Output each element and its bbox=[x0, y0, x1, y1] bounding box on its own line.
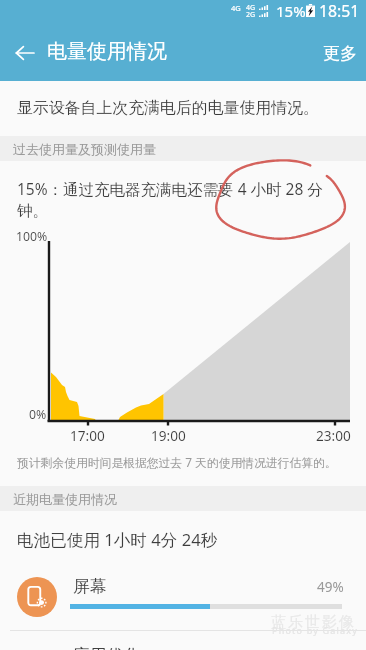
staticText: 过去使用量及预测使用量 bbox=[13, 141, 156, 157]
staticText: 显示设备自上次充满电后的电量使用情况。 bbox=[17, 98, 319, 118]
staticText: 近期电量使用情况 bbox=[13, 491, 117, 507]
staticText: 4G bbox=[231, 3, 241, 13]
staticText: 更多 bbox=[323, 43, 357, 64]
staticText: 2G bbox=[246, 10, 256, 20]
staticText: 49% bbox=[317, 578, 344, 596]
staticText: 电量使用情况 bbox=[47, 39, 167, 64]
button[interactable]: 屏幕 bbox=[0, 572, 366, 630]
staticText: 17:00 bbox=[70, 426, 105, 445]
button[interactable]: Back bbox=[1, 25, 49, 81]
staticText: 4G bbox=[246, 3, 256, 13]
staticText: Photo by Galaxy bbox=[272, 624, 359, 636]
staticText: 电池已使用 1小时 4分 24秒 bbox=[17, 528, 218, 551]
staticText: 预计剩余使用时间是根据您过去 7 天的使用情况进行估算的。 bbox=[17, 454, 337, 470]
staticText: 100% bbox=[16, 228, 48, 245]
button[interactable]: 更多 bbox=[309, 25, 366, 81]
staticText: 0% bbox=[29, 406, 47, 423]
button[interactable]: 应用优化 bbox=[0, 641, 366, 650]
staticText: 19:00 bbox=[151, 426, 186, 445]
staticText: 应用优化 bbox=[73, 645, 141, 650]
staticText: 18:51 bbox=[319, 0, 360, 22]
staticText: 15%：通过充电器充满电还需要 4 小时 28 分钟。 bbox=[17, 178, 328, 220]
staticText: 15% bbox=[276, 1, 306, 21]
staticText: 23:00 bbox=[316, 426, 351, 445]
staticText: 屏幕 bbox=[73, 576, 107, 597]
staticText: 蓝乐世影像 bbox=[270, 613, 355, 632]
